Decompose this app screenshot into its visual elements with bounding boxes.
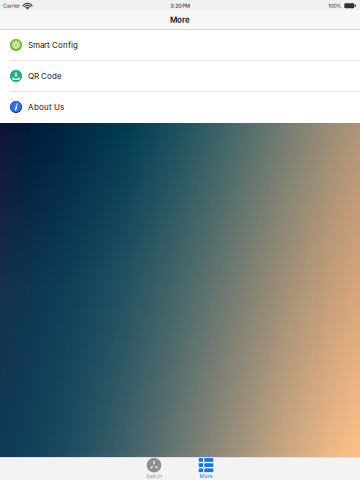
button[interactable]: i (0, 92, 360, 123)
staticText: 3:20 PM (170, 2, 190, 9)
button[interactable]: QR Code (0, 61, 360, 92)
staticText: More (199, 473, 212, 479)
staticText: 100% (328, 2, 341, 9)
staticText: Carrier (3, 2, 20, 9)
staticText: Smart Config (28, 40, 78, 50)
staticText: i (14, 101, 17, 113)
button[interactable]: Smart Config (0, 30, 360, 61)
staticText: Switch (146, 473, 162, 480)
staticText: QR Code (28, 71, 62, 81)
button[interactable]: More (180, 457, 232, 480)
staticText: More (170, 15, 190, 25)
staticText: About Us (28, 102, 64, 112)
button[interactable]: Switch (128, 457, 180, 480)
